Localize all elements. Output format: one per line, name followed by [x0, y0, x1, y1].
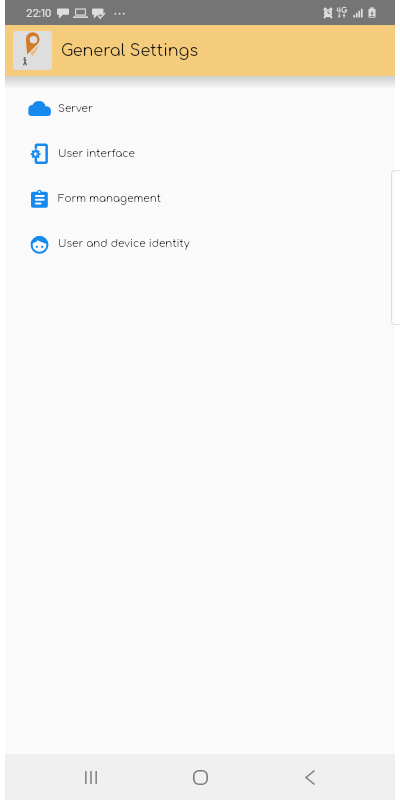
- button[interactable]: Home: [146, 754, 255, 800]
- staticText: User interface: [58, 148, 135, 160]
- button[interactable]: Form management: [5, 176, 395, 221]
- staticText: 22:10: [26, 7, 52, 19]
- staticText: Form management: [58, 193, 161, 205]
- staticText: Server: [58, 103, 93, 115]
- button[interactable]: Back: [255, 754, 364, 800]
- staticText: General Settings: [61, 42, 199, 60]
- staticText: User and device identity: [58, 238, 190, 250]
- button[interactable]: User interface: [5, 131, 395, 176]
- button[interactable]: Recent apps: [36, 754, 146, 800]
- button[interactable]: User and device identity: [5, 221, 395, 266]
- button[interactable]: Server: [5, 86, 395, 131]
- button[interactable]: ODK Collect: [13, 31, 52, 70]
